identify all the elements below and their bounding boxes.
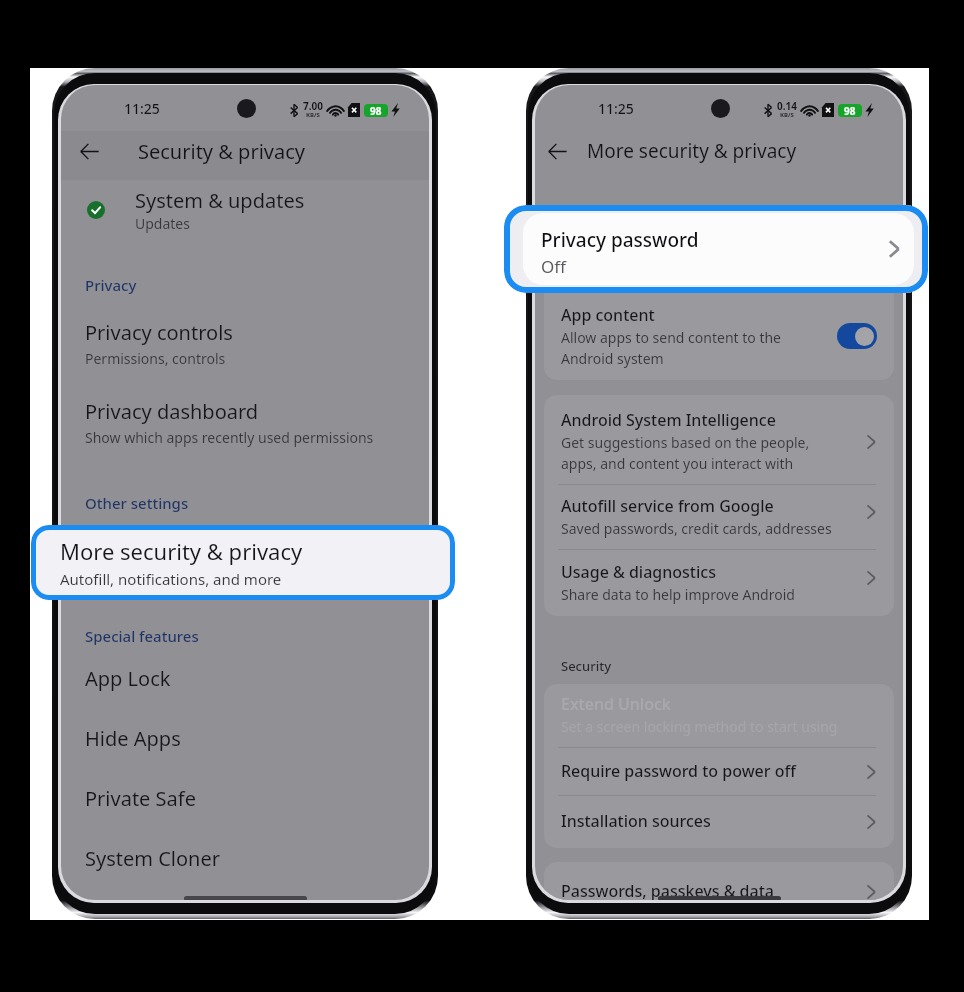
staticText: Show which apps recently used permission… [85,428,374,447]
button[interactable]: More security & privacy [31,525,455,600]
button[interactable]: Back [65,127,113,175]
button[interactable]: System Cloner [61,835,429,881]
staticText: More security & privacy [60,536,303,566]
staticText: 98 [844,104,856,117]
staticText: Security & privacy [138,138,305,165]
staticText: Permissions, controls [85,349,226,368]
staticText: KB/S [780,111,794,119]
staticText: 98 [370,104,382,117]
staticText: Privacy password [541,227,699,253]
staticText: Installation sources [561,810,711,832]
staticText: Passwords, passkeys & data [561,880,774,900]
staticText: Get suggestions based on the people, [561,433,810,452]
staticText: Android System Intelligence [561,409,776,431]
staticText: Hide Apps [85,725,181,752]
staticText: Allow apps to send content to the [561,328,781,347]
button[interactable]: Privacy dashboard [61,398,429,447]
staticText: Special features [85,626,199,646]
button[interactable]: Privacy controls [61,319,429,368]
button[interactable] [544,862,894,900]
button[interactable] [544,797,894,845]
button[interactable]: Private Safe [61,775,429,821]
button[interactable]: Privacy password [504,205,928,293]
staticText: KB/S [306,111,320,119]
staticText: Require password to power off [561,760,796,782]
staticText: 7.00 [303,99,323,113]
staticText: Usage & diagnostics [561,561,716,583]
staticText: 0.14 [777,99,797,113]
staticText: Autofill, notifications, and more [60,569,282,589]
button[interactable] [544,401,894,494]
button[interactable]: Back [535,127,581,175]
staticText: Private Safe [85,785,196,812]
staticText: Extend Unlock [561,693,671,715]
other: Open Privacy password [881,236,907,262]
staticText: App Lock [85,665,171,692]
staticText: Other settings [85,493,189,513]
staticText: Security [561,657,611,675]
staticText: Privacy [85,275,137,295]
staticText: Updates [135,214,190,233]
staticText: More security & privacy [587,138,797,164]
staticText: Privacy controls [85,319,233,346]
staticText: Set a screen locking method to start usi… [561,717,838,736]
button[interactable]: Hide Apps [61,715,429,761]
staticText: System Cloner [85,845,220,872]
staticText: 11:25 [598,99,634,118]
staticText: Saved passwords, credit cards, addresses [561,519,832,538]
staticText: Share data to help improve Android [561,585,795,604]
button[interactable] [544,553,894,613]
staticText: App content [561,304,655,326]
staticText: apps, and content you interact with [561,454,794,473]
button[interactable]: App content toggle [837,323,877,349]
staticText: Off [541,255,566,278]
button[interactable] [544,747,894,795]
button[interactable] [544,487,894,547]
staticText: Privacy dashboard [85,398,259,425]
button[interactable] [61,181,429,243]
staticText: 11:25 [124,99,160,118]
staticText: System & updates [135,187,305,214]
button[interactable]: App Lock [61,655,429,701]
staticText: Autofill service from Google [561,495,774,517]
staticText: Android system [561,349,664,368]
